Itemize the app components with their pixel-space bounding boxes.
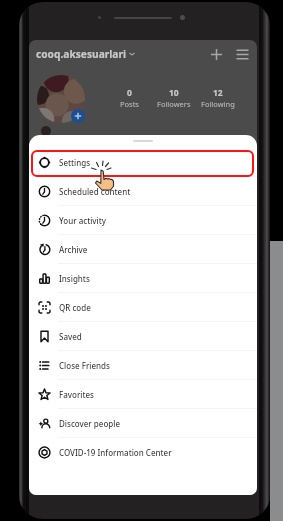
staticText: 0	[127, 87, 132, 99]
staticText: Following	[201, 99, 235, 109]
button[interactable]: Menu	[235, 47, 250, 62]
staticText: Archive	[59, 244, 88, 255]
staticText: Insights	[59, 273, 90, 284]
button[interactable]: Close Friends	[29, 351, 257, 380]
button[interactable]: Discover people	[29, 409, 257, 438]
button[interactable]: QR code	[29, 293, 257, 322]
staticText: Discover people	[59, 418, 120, 429]
staticText: Close Friends	[59, 360, 110, 371]
button[interactable]: Settings	[29, 148, 257, 177]
button[interactable]: COVID-19 Information Center	[29, 438, 257, 467]
button[interactable]: Create	[209, 47, 224, 62]
staticText: QR code	[59, 302, 91, 313]
staticText: Your activity	[59, 215, 107, 226]
button[interactable]: Scheduled content	[29, 177, 257, 206]
staticText: Scheduled content	[59, 186, 131, 197]
button[interactable]: Your activity	[29, 206, 257, 235]
staticText: COVID-19 Information Center	[59, 447, 172, 458]
staticText: Posts	[120, 99, 139, 109]
staticText: Saved	[59, 331, 82, 342]
button[interactable]: Saved	[29, 322, 257, 351]
staticText: Settings	[59, 157, 91, 168]
staticText: 10	[169, 87, 179, 99]
button[interactable]: Archive	[29, 235, 257, 264]
staticText: Followers	[157, 99, 191, 109]
staticText: cooq.aksesuarlari	[36, 47, 127, 61]
button[interactable]: Favorites	[29, 380, 257, 409]
staticText: Favorites	[59, 389, 94, 400]
staticText: 12	[213, 87, 223, 99]
button[interactable]: Insights	[29, 264, 257, 293]
